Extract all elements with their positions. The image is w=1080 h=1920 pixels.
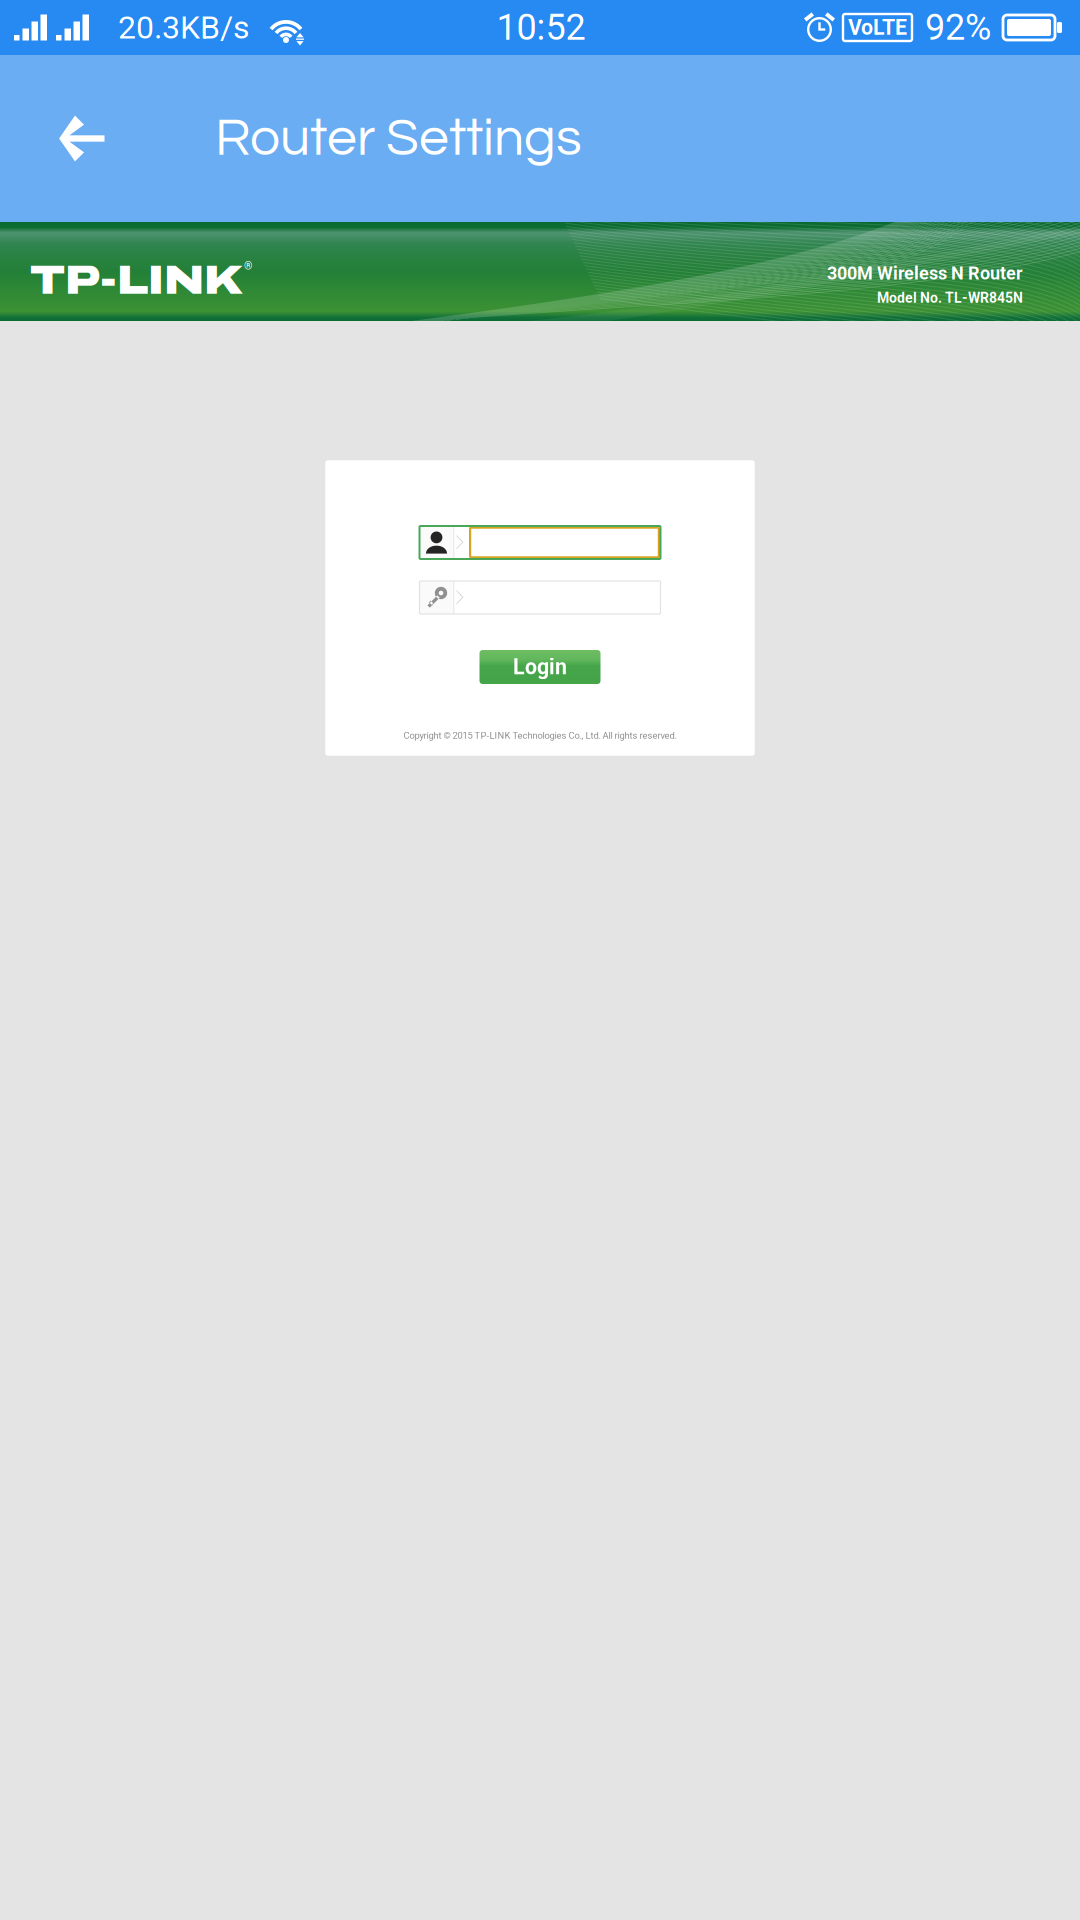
staticText: 20.3KB/s — [118, 9, 250, 46]
staticText: 300M Wireless N Router — [827, 263, 1023, 284]
staticText: 92% — [925, 6, 991, 49]
button[interactable]: Back — [0, 55, 120, 222]
staticText: VoLTE — [848, 15, 907, 40]
staticText: 10:52 — [496, 6, 585, 49]
button[interactable]: Login — [479, 650, 600, 684]
staticText: TP-LINK — [30, 259, 244, 302]
staticText: ® — [244, 260, 252, 272]
staticText: Copyright © 2015 TP-LINK Technologies Co… — [403, 730, 676, 741]
staticText: Model No. TL-WR845N — [877, 290, 1023, 306]
staticText: Login — [513, 654, 567, 679]
staticText: Router Settings — [215, 111, 582, 166]
